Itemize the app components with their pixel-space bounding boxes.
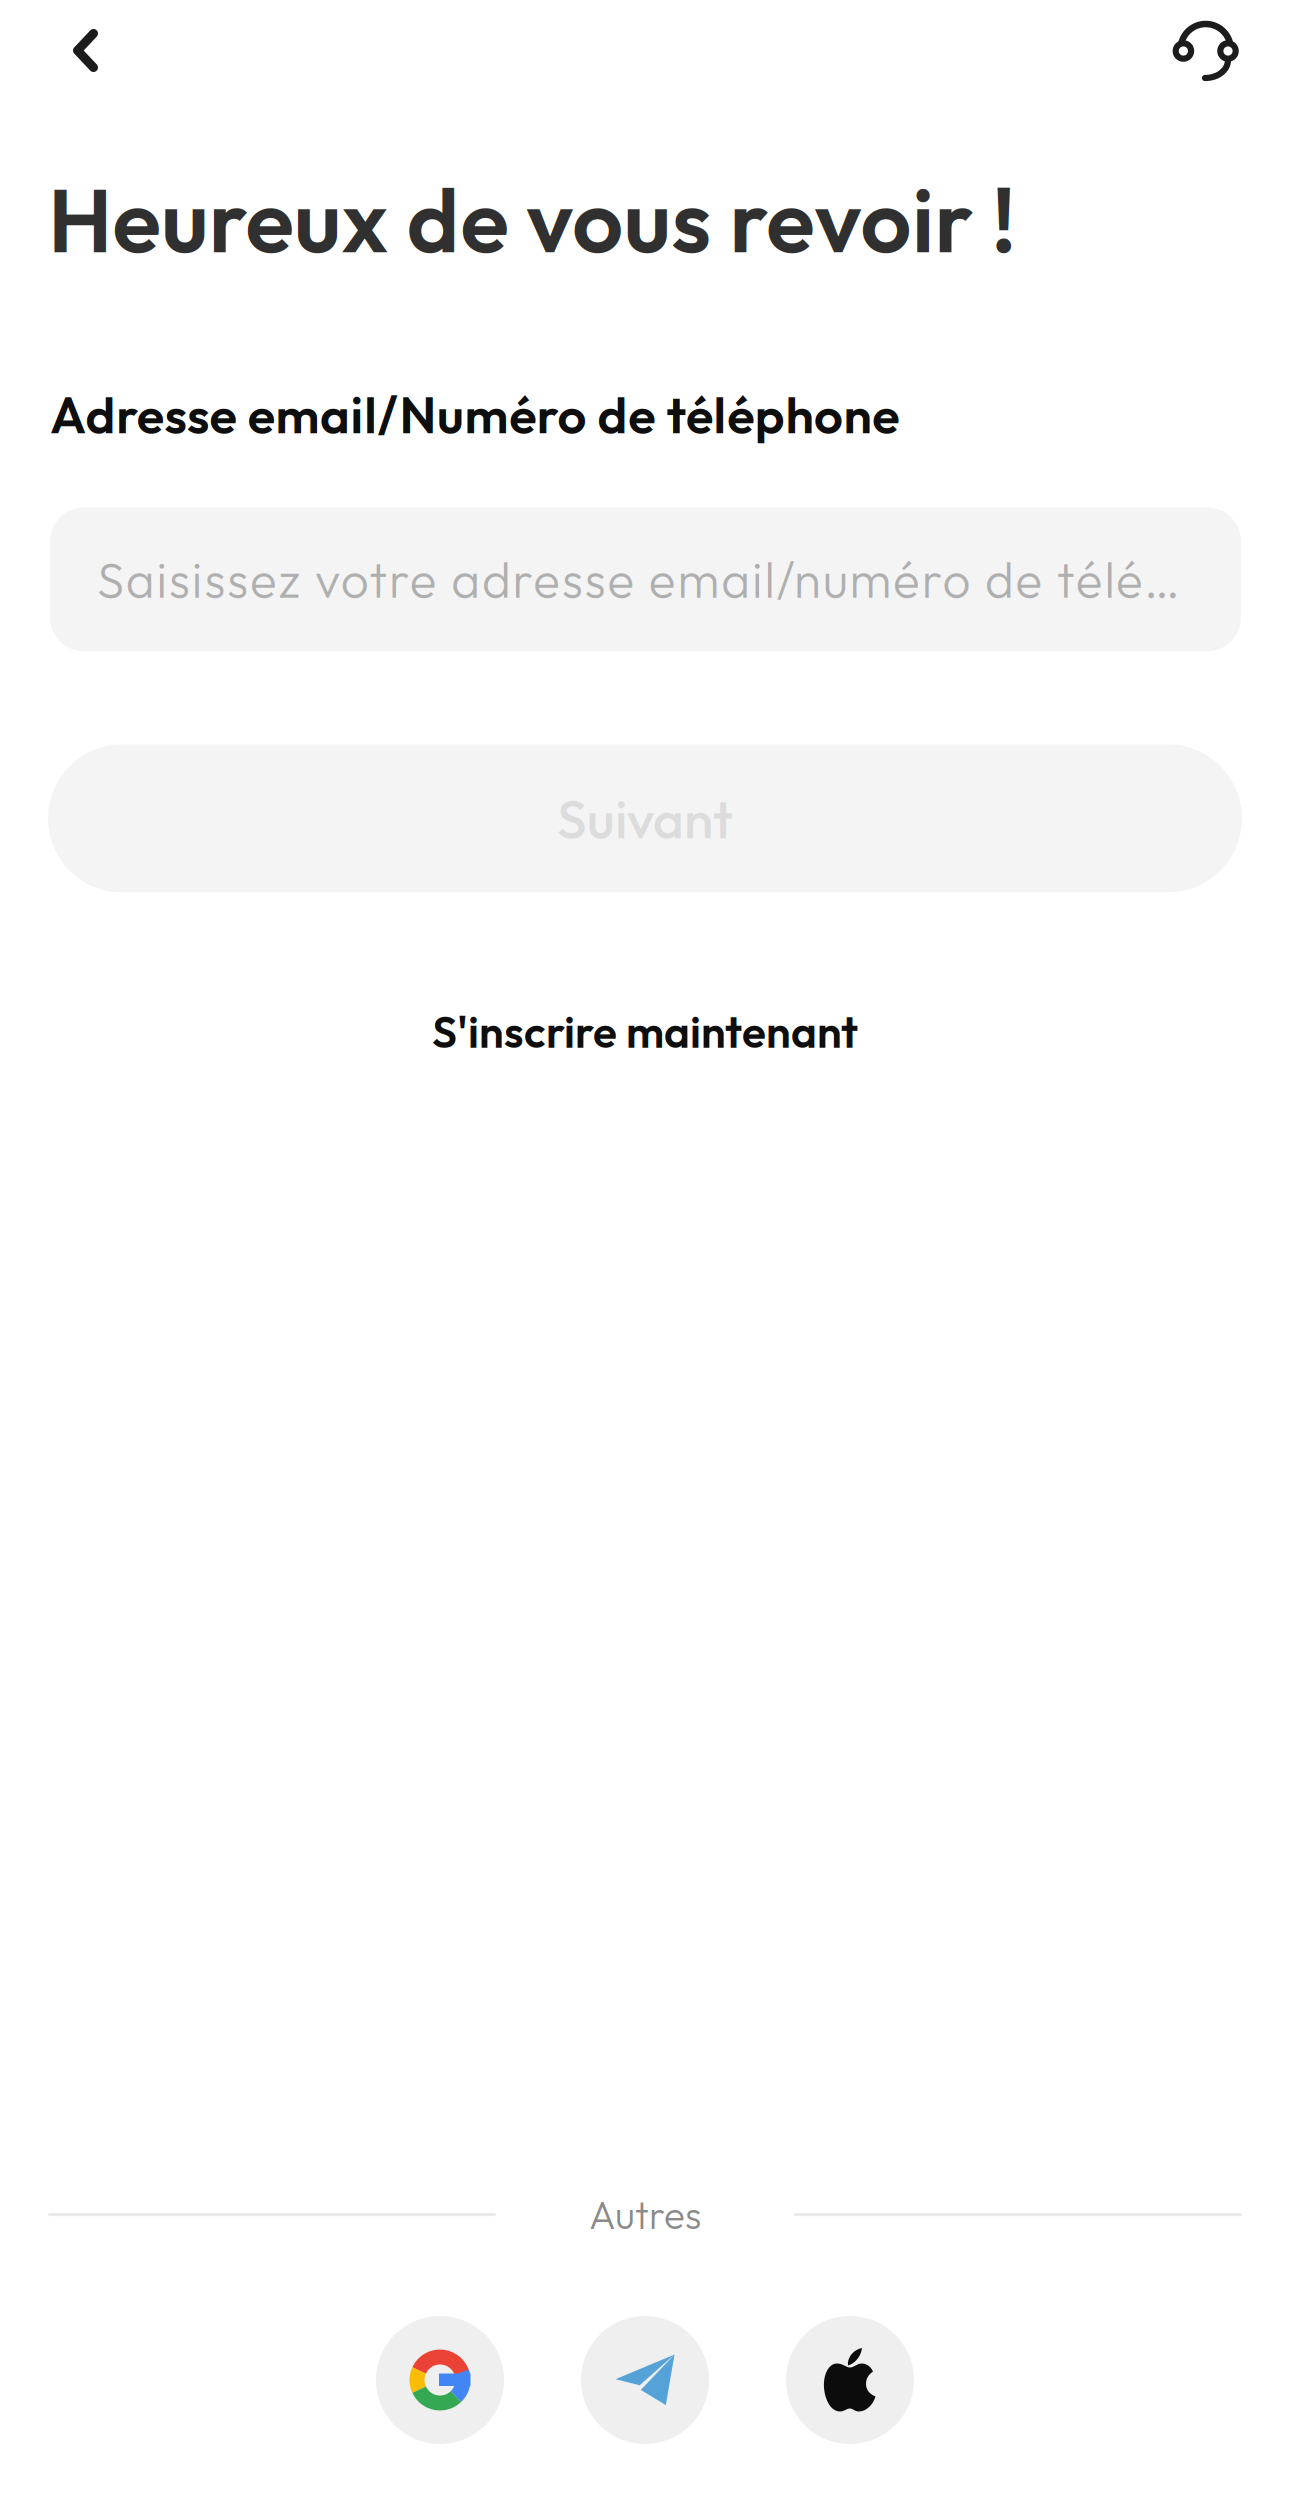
button[interactable]: Customer support xyxy=(1149,0,1290,101)
button[interactable]: Continue with Telegram xyxy=(581,2316,709,2444)
staticText: Suivant xyxy=(557,785,733,852)
button[interactable]: S'inscrire maintenant xyxy=(0,1003,1290,1059)
button[interactable]: Back xyxy=(0,0,122,101)
button[interactable]: Continue with Google xyxy=(376,2316,504,2444)
button[interactable]: Suivant xyxy=(48,744,1242,892)
staticText: Adresse email/Numéro de téléphone xyxy=(50,383,899,446)
staticText: Heureux de vous revoir ! xyxy=(48,163,1016,276)
staticText: Autres xyxy=(589,2190,701,2239)
staticText: S'inscrire maintenant xyxy=(432,1004,858,1059)
staticText: Saisissez votre adresse email/numéro de … xyxy=(97,548,1192,610)
button[interactable]: Continue with Apple xyxy=(786,2316,914,2444)
